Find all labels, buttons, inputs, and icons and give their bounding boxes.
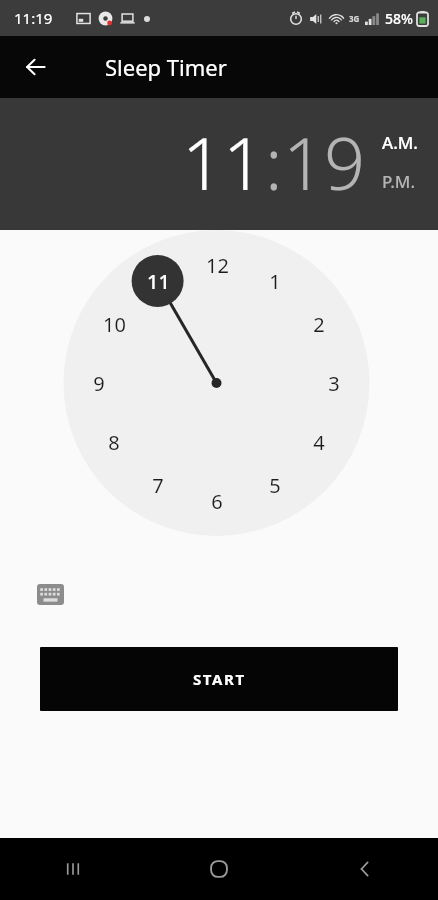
staticText: 7 — [152, 472, 164, 499]
staticText: 8 — [108, 429, 120, 456]
staticText: 6 — [211, 488, 223, 515]
staticText: 4 — [313, 429, 325, 456]
staticText: : — [265, 113, 283, 211]
button[interactable]: Recents — [0, 838, 146, 900]
button[interactable]: Home — [146, 838, 292, 900]
staticText: 10 — [103, 311, 126, 338]
button[interactable]: 19 — [283, 113, 366, 211]
button[interactable]: Back — [292, 838, 438, 900]
staticText: 58% — [385, 9, 413, 28]
staticText: 11:19 — [14, 8, 53, 28]
button[interactable]: P.M. — [382, 167, 416, 196]
button[interactable]: START — [40, 647, 398, 711]
button[interactable]: Clock face hour picker — [0, 230, 438, 560]
button[interactable]: 11 — [182, 113, 265, 211]
staticText: 11 — [182, 113, 265, 211]
staticText: 2 — [313, 311, 325, 338]
staticText: 19 — [283, 113, 366, 211]
staticText: 5 — [269, 472, 281, 499]
staticText: 3 — [328, 370, 340, 397]
staticText: 3G — [349, 13, 360, 24]
staticText: 9 — [93, 370, 105, 397]
staticText: START — [193, 669, 246, 689]
staticText: P.M. — [382, 170, 416, 193]
button[interactable]: Back — [14, 45, 58, 89]
staticText: 12 — [206, 252, 229, 279]
button[interactable]: A.M. — [382, 128, 418, 157]
staticText: 11 — [147, 268, 170, 295]
staticText: Sleep Timer — [105, 52, 227, 82]
staticText: A.M. — [382, 131, 418, 154]
button[interactable]: Switch to text input — [28, 574, 72, 614]
staticText: 1 — [269, 268, 281, 295]
